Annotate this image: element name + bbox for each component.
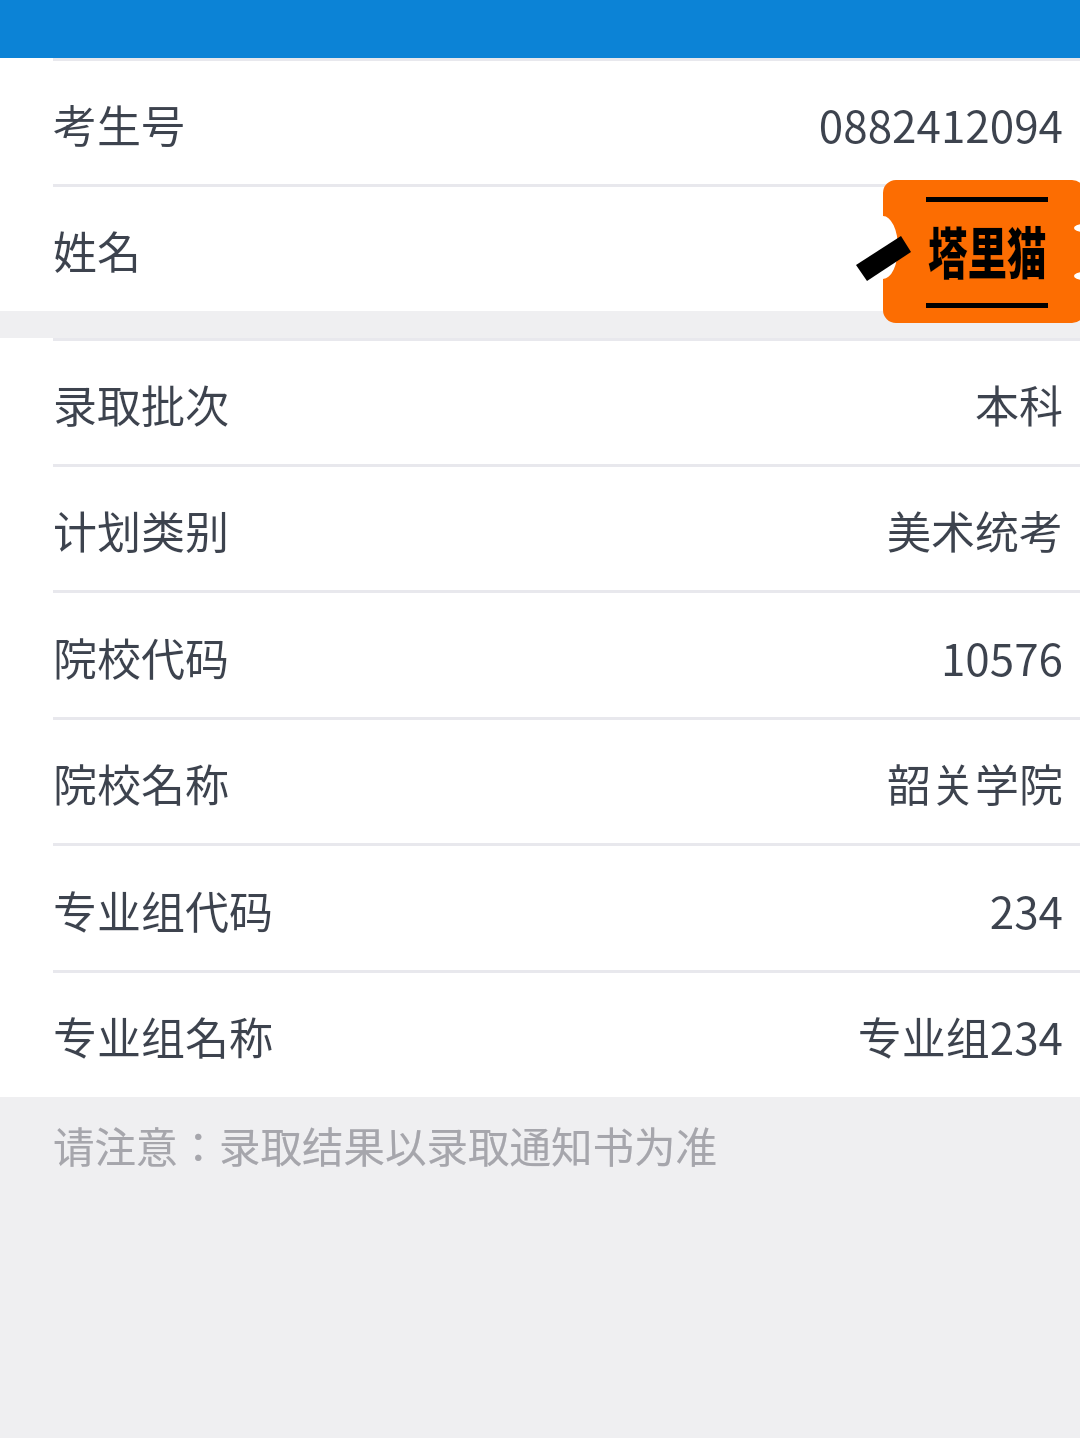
staticText: 10576 (940, 625, 1063, 689)
button[interactable]: 计划类别 (0, 465, 1080, 591)
button[interactable]: 院校名称 (0, 718, 1080, 844)
button[interactable]: 专业组名称 (0, 971, 1080, 1097)
staticText: 塔里猫 (928, 210, 1047, 291)
staticText: 韶关学院 (887, 751, 1063, 815)
button[interactable]: 专业组代码 (0, 844, 1080, 971)
staticText: 美术统考 (887, 498, 1063, 562)
staticText: 0882412094 (818, 92, 1063, 156)
staticText: 录取批次 (53, 372, 229, 436)
button[interactable]: 姓名 (0, 185, 1080, 311)
other: Watermark (0, 0, 1080, 1438)
button[interactable]: 录取批次 (0, 338, 1080, 465)
staticText: 专业组代码 (53, 878, 273, 942)
staticText: 请注意：录取结果以录取通知书为准 (53, 1115, 718, 1175)
staticText: 院校代码 (53, 625, 229, 689)
staticText: 专业组名称 (53, 1004, 273, 1068)
staticText: 院校名称 (53, 751, 229, 815)
staticText: 计划类别 (53, 498, 229, 562)
button[interactable]: 考生号 (0, 58, 1080, 185)
staticText: 专业组234 (857, 1004, 1063, 1068)
staticText: 本科 (975, 372, 1063, 436)
staticText: 234 (989, 878, 1063, 942)
staticText: 姓名 (53, 218, 141, 282)
button[interactable]: 院校代码 (0, 591, 1080, 718)
staticText: 考生号 (53, 92, 185, 156)
